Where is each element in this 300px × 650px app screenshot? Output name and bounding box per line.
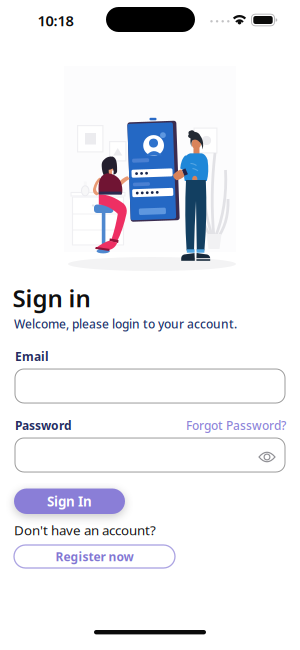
button[interactable]: Password <box>15 438 285 472</box>
staticText: Don't have an account? <box>14 521 156 539</box>
staticText: Password <box>15 417 72 433</box>
button[interactable]: Email <box>15 369 285 403</box>
staticText: Welcome, please login to your account. <box>14 316 237 332</box>
button[interactable]: Home <box>94 630 206 634</box>
button[interactable]: Forgot Password? <box>186 417 286 433</box>
button[interactable]: Show password <box>0 0 300 650</box>
staticText: Sign In <box>47 492 92 510</box>
staticText: Register now <box>55 548 133 564</box>
button[interactable]: Sign In <box>14 488 125 514</box>
staticText: Sign in <box>12 282 90 314</box>
staticText: Email <box>15 348 49 364</box>
staticText: 10:18 <box>37 11 73 30</box>
staticText: Forgot Password? <box>186 417 286 433</box>
button[interactable]: Register now <box>14 545 175 568</box>
